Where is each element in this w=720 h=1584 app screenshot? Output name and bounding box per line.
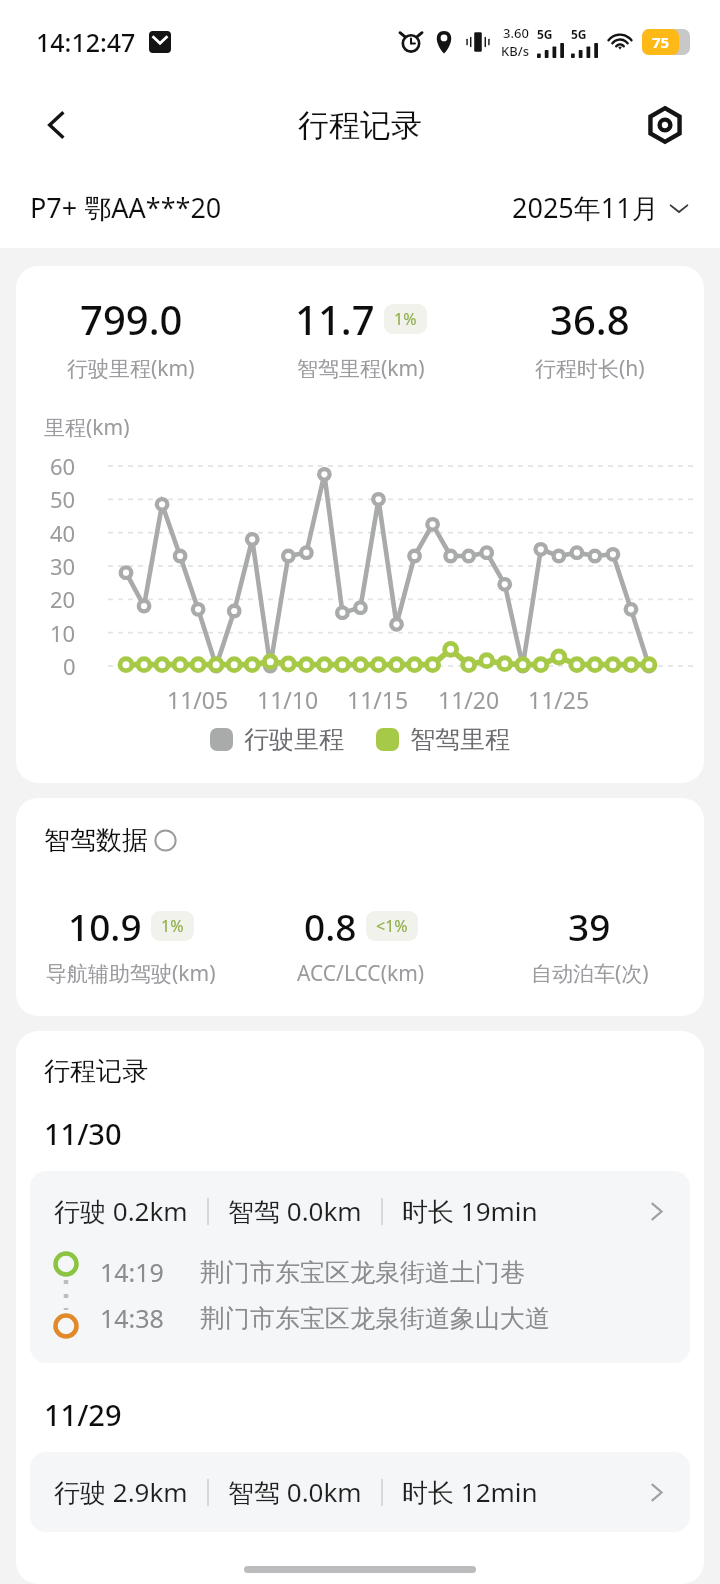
staticText: P7+ 鄂AA***20 [30, 189, 222, 226]
staticText: 2025年11月 [512, 189, 659, 226]
staticText: 11/30 [44, 1114, 122, 1153]
staticText: 39 [568, 901, 611, 951]
staticText: <1% [376, 915, 408, 937]
staticText: 10 [50, 618, 76, 648]
staticText: 20 [50, 584, 76, 614]
staticText: 里程(km) [44, 413, 130, 442]
staticText: 行驶里程 [244, 724, 344, 755]
staticText: 时长 12min [402, 1474, 538, 1510]
staticText: 10.9 [68, 901, 142, 951]
staticText: 行程记录 [44, 1055, 148, 1088]
staticText: 行驶里程(km) [67, 354, 195, 383]
staticText: 智驾数据 [44, 824, 148, 857]
staticText: 时长 19min [402, 1193, 538, 1229]
button[interactable]: Settings [634, 94, 696, 156]
staticText: 11/20 [438, 684, 500, 715]
staticText: 行程时长(h) [535, 354, 645, 383]
staticText: 0 [63, 651, 76, 681]
staticText: 3.60 [503, 24, 529, 42]
staticText: ACC/LCC(km) [297, 959, 425, 988]
staticText: KB/s [501, 42, 530, 60]
button[interactable]: 智驾数据 [44, 824, 177, 857]
staticText: 11/25 [528, 684, 590, 715]
staticText: 行驶 0.2km [54, 1193, 188, 1229]
button[interactable]: 行驶 0.2km [30, 1171, 690, 1363]
staticText: 36.8 [550, 292, 630, 346]
staticText: 智驾里程 [410, 724, 510, 755]
staticText: 智驾里程(km) [297, 354, 425, 383]
button[interactable]: 行驶 2.9km [30, 1452, 690, 1532]
staticText: 14:19 [100, 1255, 164, 1289]
staticText: 11/15 [347, 684, 409, 715]
staticText: 14:12:47 [36, 25, 136, 59]
staticText: 导航辅助驾驶(km) [46, 959, 216, 988]
staticText: 40 [50, 518, 76, 548]
staticText: 11/29 [44, 1395, 122, 1434]
staticText: 自动泊车(次) [531, 959, 649, 988]
staticText: 1% [161, 915, 184, 937]
staticText: 5G [537, 26, 553, 42]
staticText: 799.0 [80, 292, 183, 346]
staticText: 30 [50, 551, 76, 581]
staticText: 14:38 [100, 1301, 164, 1335]
staticText: 0.8 [304, 901, 357, 951]
staticText: 行程记录 [298, 106, 422, 145]
staticText: 荆门市东宝区龙泉街道象山大道 [200, 1303, 550, 1334]
staticText: 行驶 2.9km [54, 1474, 188, 1510]
button[interactable]: Back [26, 94, 88, 156]
staticText: 75 [652, 32, 670, 52]
staticText: 荆门市东宝区龙泉街道土门巷 [200, 1257, 525, 1288]
staticText: 60 [50, 451, 76, 481]
staticText: 智驾 0.0km [228, 1474, 362, 1510]
staticText: 智驾 0.0km [228, 1193, 362, 1229]
staticText: 11/05 [167, 684, 229, 715]
staticText: 5G [571, 26, 587, 42]
staticText: 11/10 [257, 684, 319, 715]
staticText: 11.7 [295, 292, 375, 346]
button[interactable]: 2025年11月 [512, 189, 690, 226]
staticText: 1% [394, 308, 417, 330]
staticText: 50 [50, 484, 76, 514]
